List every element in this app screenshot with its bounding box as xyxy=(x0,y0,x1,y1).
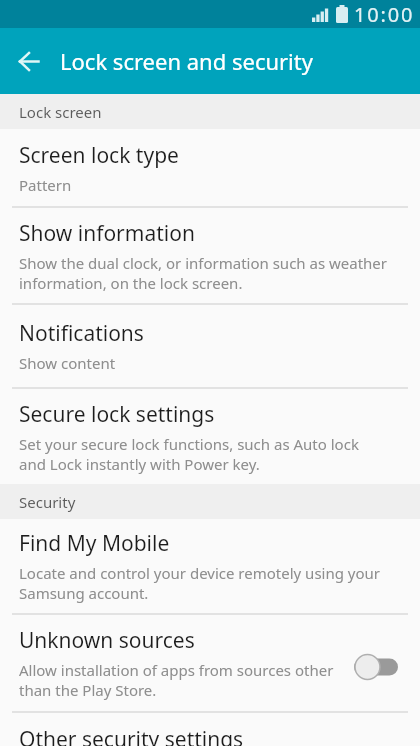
button[interactable]: Find My Mobile xyxy=(0,519,420,613)
button[interactable]: Screen lock type xyxy=(0,129,420,206)
staticText: Security xyxy=(19,492,76,512)
staticText: Unknown sources xyxy=(19,626,195,655)
staticText: Notifications xyxy=(19,319,144,348)
button[interactable]: Notifications xyxy=(0,305,420,387)
staticText: Secure lock settings xyxy=(19,400,215,429)
button[interactable] xyxy=(0,28,56,94)
button[interactable]: Secure lock settings xyxy=(0,389,420,484)
staticText: 10:00 xyxy=(354,1,415,28)
staticText: Other security settings xyxy=(19,725,244,746)
staticText: Find My Mobile xyxy=(19,529,170,558)
staticText: Pattern xyxy=(19,175,72,195)
staticText: Show information xyxy=(19,219,195,248)
staticText: Lock screen and security xyxy=(60,46,313,76)
staticText: Locate and control your device remotely … xyxy=(19,563,381,603)
button[interactable]: Show information xyxy=(0,208,420,303)
button[interactable]: Unknown sources xyxy=(0,615,420,711)
staticText: Set your secure lock functions, such as … xyxy=(19,434,359,474)
staticText: Show the dual clock, or information such… xyxy=(19,253,388,293)
staticText: Show content xyxy=(19,353,116,373)
button[interactable]: Other security settings xyxy=(0,713,420,746)
staticText: Lock screen xyxy=(19,102,102,122)
staticText: Screen lock type xyxy=(19,141,179,170)
staticText: Allow installation of apps from sources … xyxy=(19,660,334,700)
